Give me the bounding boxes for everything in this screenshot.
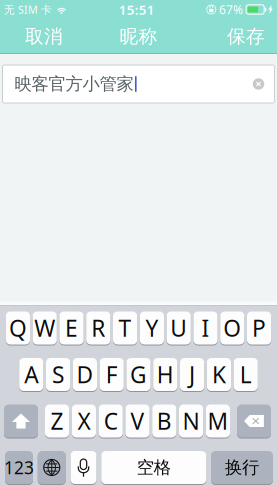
staticText: K: [212, 359, 226, 389]
button[interactable]: W: [33, 311, 57, 345]
button[interactable]: E: [59, 311, 84, 345]
staticText: Q: [9, 313, 27, 343]
staticText: P: [252, 313, 266, 343]
staticText: J: [189, 359, 195, 389]
button[interactable]: K: [207, 357, 231, 391]
staticText: A: [24, 359, 38, 389]
button[interactable]: 123: [5, 450, 33, 484]
button[interactable]: J: [180, 357, 204, 391]
button[interactable]: Delete: [237, 404, 271, 438]
button[interactable]: D: [73, 357, 97, 391]
staticText: 无 SIM 卡: [4, 2, 52, 17]
button[interactable]: 保存: [218, 19, 274, 53]
staticText: H: [157, 359, 174, 389]
staticText: Z: [51, 406, 64, 436]
button[interactable]: T: [113, 311, 137, 345]
staticText: 昵称: [119, 25, 157, 48]
staticText: 15:51: [119, 1, 155, 18]
button[interactable]: Shift: [4, 404, 38, 438]
staticText: C: [104, 406, 118, 436]
button[interactable]: U: [167, 311, 191, 345]
button[interactable]: M: [206, 404, 230, 438]
staticText: 67%: [219, 1, 243, 17]
staticText: 123: [4, 456, 34, 479]
staticText: X: [77, 406, 90, 436]
staticText: 映客官方小管家: [14, 73, 133, 95]
button[interactable]: Dictation: [70, 450, 96, 484]
button[interactable]: V: [125, 404, 150, 438]
staticText: T: [119, 313, 132, 343]
button[interactable]: S: [46, 357, 70, 391]
button[interactable]: G: [126, 357, 151, 391]
staticText: M: [207, 406, 228, 436]
button[interactable]: Z: [45, 404, 69, 438]
staticText: L: [240, 359, 252, 389]
button[interactable]: X: [72, 404, 96, 438]
button[interactable]: O: [220, 311, 244, 345]
staticText: 取消: [25, 25, 63, 48]
staticText: F: [106, 359, 118, 389]
staticText: B: [157, 406, 172, 436]
staticText: W: [34, 313, 55, 343]
staticText: 空格: [137, 457, 171, 478]
staticText: Y: [145, 313, 158, 343]
button[interactable]: Next keyboard: [38, 450, 66, 484]
button[interactable]: H: [153, 357, 177, 391]
button[interactable]: Y: [140, 311, 164, 345]
button[interactable]: 换行: [211, 450, 273, 484]
button[interactable]: C: [99, 404, 123, 438]
staticText: D: [76, 359, 93, 389]
button[interactable]: R: [86, 311, 110, 345]
staticText: V: [130, 406, 144, 436]
button[interactable]: 取消: [16, 19, 72, 53]
button[interactable]: Clear text: [242, 65, 274, 103]
button[interactable]: 空格: [101, 450, 206, 484]
button[interactable]: A: [19, 357, 43, 391]
staticText: I: [201, 313, 209, 343]
staticText: G: [130, 359, 147, 389]
button[interactable]: L: [234, 357, 258, 391]
button[interactable]: N: [179, 404, 203, 438]
staticText: N: [183, 406, 200, 436]
staticText: U: [170, 313, 187, 343]
button[interactable]: Q: [6, 311, 30, 345]
staticText: 保存: [227, 25, 265, 48]
staticText: E: [65, 313, 78, 343]
staticText: R: [91, 313, 105, 343]
button[interactable]: F: [100, 357, 124, 391]
staticText: 换行: [225, 457, 259, 478]
button[interactable]: I: [193, 311, 218, 345]
staticText: O: [223, 313, 241, 343]
staticText: S: [52, 359, 64, 389]
button[interactable]: B: [152, 404, 176, 438]
button[interactable]: P: [247, 311, 271, 345]
